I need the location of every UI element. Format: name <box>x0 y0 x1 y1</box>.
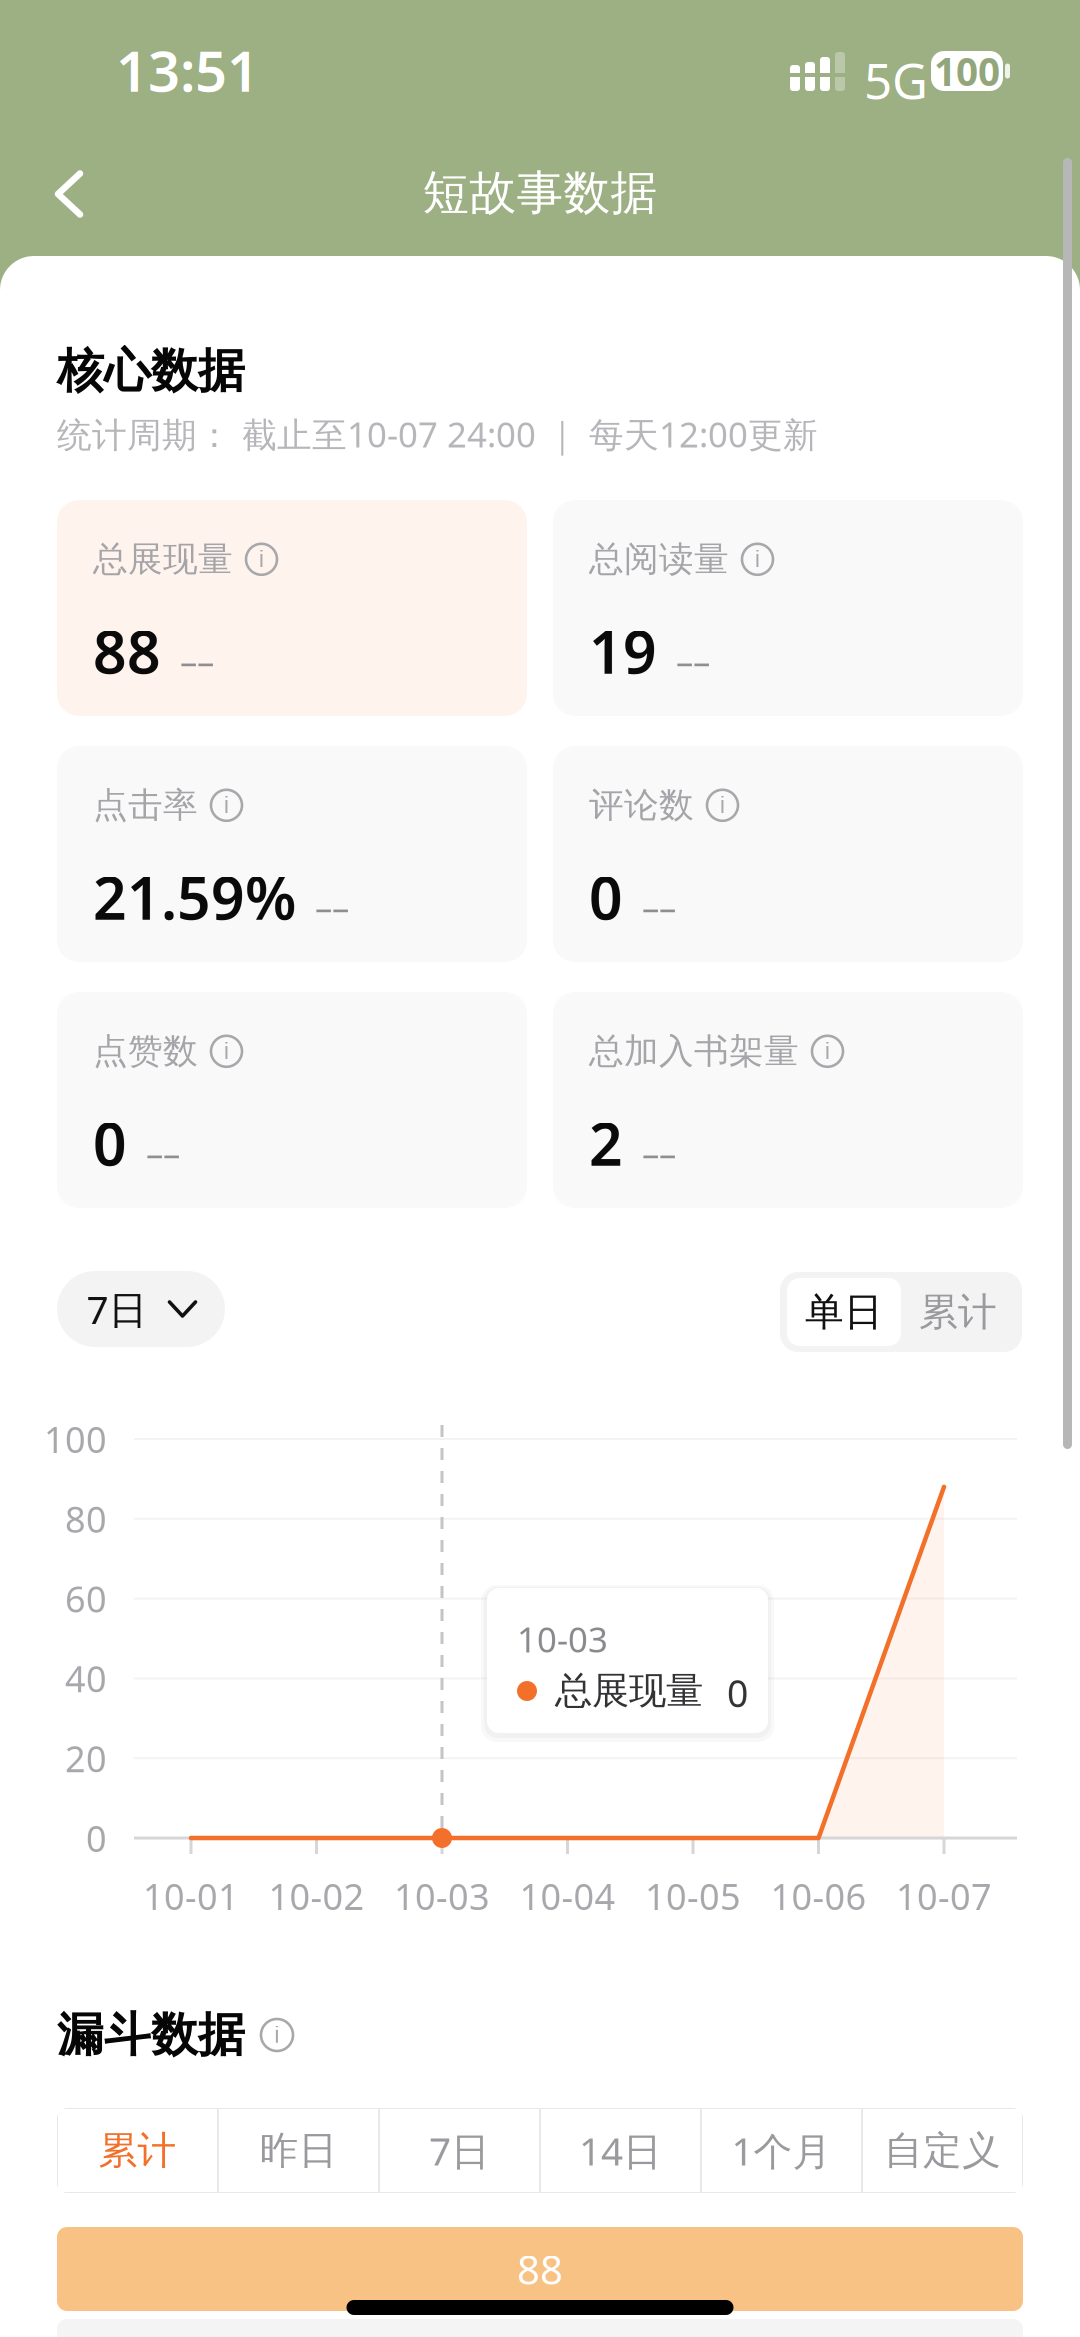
staticText: 10-07 <box>896 1872 992 1920</box>
staticText: i <box>719 789 725 819</box>
button[interactable]: 7日 <box>57 1271 225 1347</box>
staticText: 2 <box>589 1104 623 1182</box>
staticText: 7日 <box>429 2125 490 2176</box>
staticText: 核心数据 <box>57 342 245 400</box>
staticText: i <box>223 1035 229 1065</box>
staticText: 5G <box>864 47 928 112</box>
staticText: 10-02 <box>268 1872 364 1920</box>
staticText: 点赞数 <box>93 1030 198 1073</box>
staticText: 10-04 <box>519 1872 615 1920</box>
staticText: –– <box>180 638 214 684</box>
staticText: 10-01 <box>143 1872 239 1920</box>
button[interactable]: 昨日 <box>218 2108 379 2193</box>
staticText: 14日 <box>579 2125 662 2176</box>
button[interactable]: 14日 <box>540 2108 701 2193</box>
staticText: 漏斗数据 <box>57 2006 245 2064</box>
staticText: 总加入书架量 <box>589 1030 799 1073</box>
staticText: 总阅读量 <box>589 538 729 581</box>
staticText: –– <box>642 884 676 930</box>
button[interactable]: 累计 <box>901 1278 1015 1346</box>
button[interactable]: 1个月 <box>701 2108 862 2193</box>
staticText: 80 <box>65 1495 107 1543</box>
staticText: 总展现量 <box>555 1668 703 1714</box>
staticText: 10-05 <box>645 1872 741 1920</box>
staticText: 100 <box>934 45 1000 97</box>
button[interactable]: 单日 <box>787 1278 901 1346</box>
staticText: 100 <box>44 1415 107 1463</box>
staticText: –– <box>642 1130 676 1176</box>
staticText: 评论数 <box>589 784 694 827</box>
staticText: 短故事数据 <box>422 164 657 222</box>
staticText: i <box>754 543 760 573</box>
staticText: 昨日 <box>259 2127 337 2174</box>
staticText: 88 <box>517 2242 563 2295</box>
staticText: 总展现量 <box>93 538 233 581</box>
staticText: i <box>274 2019 280 2049</box>
staticText: –– <box>146 1130 180 1176</box>
staticText: 点击率 <box>93 784 198 827</box>
staticText: 21.59% <box>93 858 296 936</box>
staticText: i <box>223 789 229 819</box>
staticText: 单日 <box>805 1288 883 1336</box>
button[interactable]: 7日 <box>379 2108 540 2193</box>
staticText: 10-03 <box>517 1616 608 1662</box>
staticText: 自定义 <box>884 2127 1001 2174</box>
staticText: i <box>824 1035 830 1065</box>
staticText: 20 <box>65 1734 107 1782</box>
staticText: 1个月 <box>731 2125 831 2176</box>
staticText: 7日 <box>86 1283 147 1335</box>
button[interactable]: 累计 <box>57 2108 218 2193</box>
staticText: 13:51 <box>116 33 259 107</box>
staticText: 累计 <box>98 2127 176 2174</box>
staticText: 统计周期： 截止至10-07 24:00 ｜ 每天12:00更新 <box>57 411 818 457</box>
staticText: 40 <box>65 1654 107 1702</box>
staticText: 0 <box>727 1668 748 1718</box>
staticText: i <box>258 543 264 573</box>
button[interactable]: Back <box>21 146 117 242</box>
staticText: 0 <box>86 1814 107 1862</box>
staticText: –– <box>315 884 349 930</box>
button[interactable]: 自定义 <box>862 2108 1023 2193</box>
staticText: 0 <box>93 1104 127 1182</box>
staticText: 88 <box>93 612 161 690</box>
staticText: 10-03 <box>394 1872 490 1920</box>
staticText: 19 <box>589 612 657 690</box>
staticText: 10-06 <box>770 1872 866 1920</box>
staticText: 60 <box>65 1575 107 1622</box>
staticText: 0 <box>589 858 623 936</box>
staticText: –– <box>676 638 710 684</box>
staticText: 累计 <box>919 1288 997 1336</box>
